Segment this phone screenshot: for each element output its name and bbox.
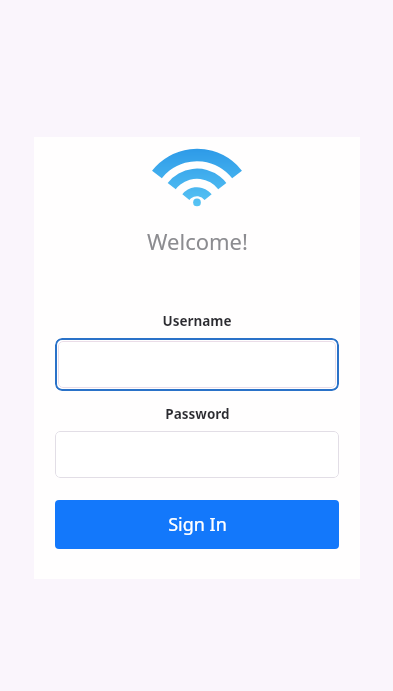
other: Wi-Fi — [163, 150, 231, 212]
staticText: Password — [165, 405, 230, 423]
staticText: Username — [162, 312, 232, 330]
button[interactable] — [58, 341, 336, 388]
button[interactable]: Sign In — [55, 500, 339, 549]
staticText: Welcome! — [147, 226, 248, 256]
staticText: Sign In — [168, 512, 227, 537]
button[interactable] — [55, 431, 339, 478]
